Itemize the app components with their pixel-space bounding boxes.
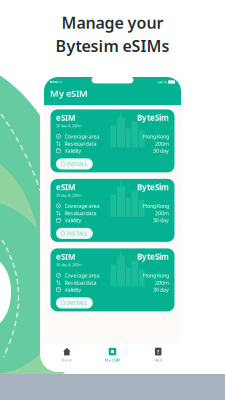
staticText: ?: [157, 348, 160, 355]
staticText: INSTALL: [67, 299, 88, 306]
staticText: Manage your: [61, 12, 163, 33]
staticText: Hong Kong: [143, 133, 169, 140]
staticText: Hong Kong: [143, 272, 169, 279]
staticText: Coverage area: [64, 133, 99, 140]
staticText: 30 day & 200m: [56, 262, 82, 267]
staticText: Residual data: [64, 140, 96, 147]
staticText: eSIM: [56, 112, 76, 123]
staticText: ByteSim: [137, 182, 169, 192]
staticText: 30 day: [153, 286, 169, 293]
staticText: 200m: [155, 140, 169, 147]
staticText: My eSIM: [50, 87, 88, 99]
staticText: 30 day & 200m: [56, 192, 82, 198]
staticText: Residual data: [64, 279, 96, 286]
staticText: Validity: [64, 286, 81, 293]
staticText: ByteSim: [137, 112, 169, 123]
staticText: Hong Kong: [143, 202, 169, 209]
staticText: Validity: [64, 147, 81, 154]
staticText: 200m: [155, 279, 169, 286]
staticText: Validity: [64, 217, 81, 224]
staticText: eSIM: [56, 251, 76, 262]
staticText: 30 day: [153, 147, 169, 154]
staticText: Coverage area: [64, 272, 99, 279]
button[interactable]: My eSIM: [90, 344, 135, 366]
staticText: My eSIM: [104, 357, 120, 362]
button[interactable]: INSTALL: [56, 228, 93, 239]
staticText: 30 day: [153, 217, 169, 224]
staticText: INSTALL: [67, 230, 88, 237]
staticText: 30 day & 200m: [56, 123, 82, 128]
button[interactable]: ?: [135, 344, 181, 366]
staticText: 200m: [155, 209, 169, 217]
staticText: eSIM: [56, 182, 76, 192]
staticText: Home: [61, 357, 72, 362]
staticText: Coverage area: [64, 202, 99, 209]
staticText: INSTALL: [67, 160, 88, 167]
staticText: Bytesim eSIMs: [55, 35, 169, 56]
button[interactable]: INSTALL: [56, 158, 93, 169]
staticText: 100 %: [157, 79, 167, 85]
button[interactable]: Home: [44, 344, 90, 366]
staticText: ByteSim: [137, 251, 169, 262]
button[interactable]: INSTALL: [56, 297, 93, 308]
staticText: Residual data: [64, 209, 96, 217]
staticText: FAQs: [154, 357, 163, 362]
